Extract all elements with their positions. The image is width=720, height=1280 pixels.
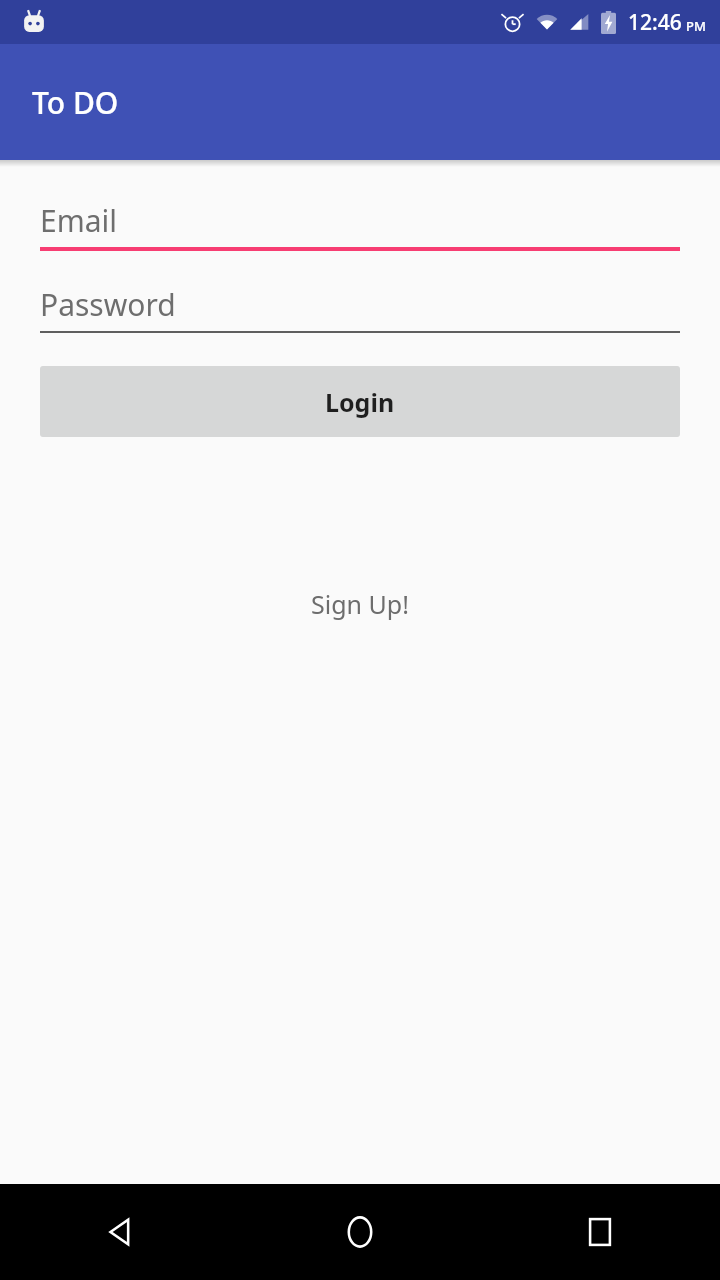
button[interactable]: Password [40, 277, 680, 333]
staticText: Sign Up! [311, 587, 409, 621]
staticText: Password [40, 284, 176, 325]
button[interactable]: Login [40, 366, 680, 437]
staticText: Email [40, 200, 118, 241]
button[interactable]: Sign Up! [297, 581, 423, 627]
staticText: 12:46 [628, 8, 682, 37]
staticText: To DO [32, 82, 119, 123]
button[interactable]: Email [40, 193, 680, 251]
staticText: Login [325, 385, 395, 419]
staticText: PM [686, 17, 706, 35]
button[interactable]: Back [0, 1184, 240, 1280]
button[interactable]: Home [240, 1184, 480, 1280]
button[interactable]: Recent apps [480, 1184, 720, 1280]
